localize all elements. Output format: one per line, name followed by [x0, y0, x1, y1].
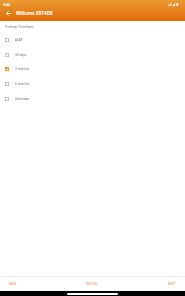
button[interactable]: ASAP [0, 32, 185, 47]
staticText: BACK [9, 282, 17, 286]
button[interactable]: NEXT [123, 282, 185, 286]
staticText: Purchase Timeframe [5, 25, 35, 29]
button[interactable]: 30 days [0, 47, 185, 62]
staticText: 9:44 [3, 2, 11, 7]
button[interactable]: Unknown [0, 91, 185, 106]
button[interactable]: BACK [0, 282, 61, 286]
button[interactable]: 3 months [0, 61, 185, 76]
staticText: 3 months [15, 67, 30, 71]
staticText: ASAP [15, 38, 23, 42]
staticText: Williams KRT4BR [16, 10, 53, 16]
button[interactable]: Back [0, 7, 14, 19]
button[interactable]: SKIP ALL [61, 282, 123, 286]
button[interactable]: 6 months [0, 76, 185, 91]
staticText: Unknown [15, 97, 30, 101]
staticText: 6 months [15, 82, 30, 86]
staticText: 30 days [15, 53, 27, 57]
staticText: SKIP ALL [86, 282, 98, 286]
staticText: NEXT [168, 282, 176, 286]
